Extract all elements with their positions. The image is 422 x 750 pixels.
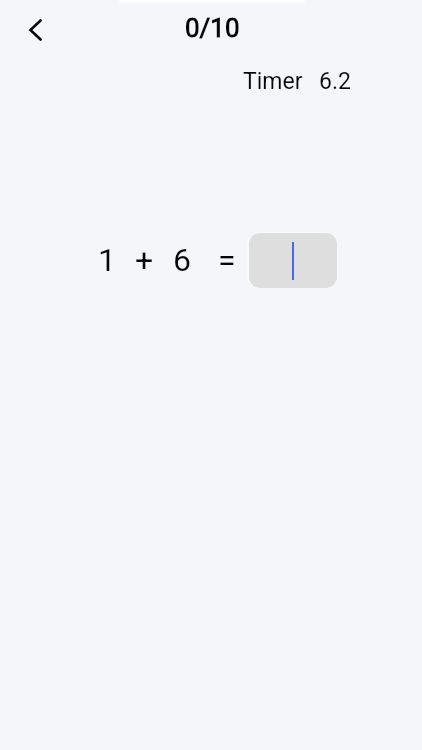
button[interactable]: Answer input: [249, 233, 337, 288]
staticText: 6.2: [319, 68, 351, 95]
button[interactable]: Back: [11, 6, 59, 54]
staticText: =: [218, 241, 236, 279]
staticText: 0/10: [185, 13, 240, 43]
staticText: Timer: [243, 68, 303, 95]
staticText: 1: [98, 241, 116, 279]
staticText: 6: [173, 241, 191, 279]
staticText: +: [135, 241, 154, 279]
